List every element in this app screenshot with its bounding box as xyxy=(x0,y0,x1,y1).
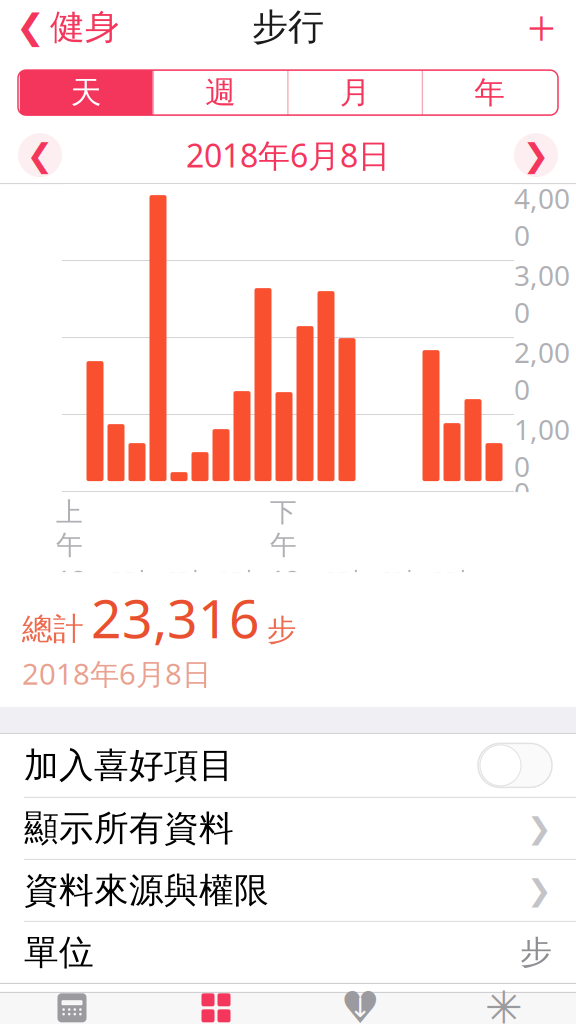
staticText: 2018年6月8日 xyxy=(186,134,390,176)
button[interactable]: 單位 xyxy=(0,922,576,983)
staticText: 天 xyxy=(71,74,102,111)
button[interactable]: 週 xyxy=(154,70,287,115)
staticText: ❯ xyxy=(527,812,552,845)
staticText: 步 xyxy=(520,933,552,972)
staticText: 總計 xyxy=(22,610,84,648)
staticText: 4,000 xyxy=(514,179,570,254)
button[interactable]: 月 xyxy=(289,70,422,115)
staticText: 0 xyxy=(514,473,530,511)
button[interactable]: ❮ xyxy=(0,0,136,58)
staticText: ❯ xyxy=(522,137,549,173)
staticText: ❮ xyxy=(26,137,53,173)
staticText: 年 xyxy=(474,74,505,111)
staticText: 3,000 xyxy=(514,256,570,331)
staticText: 6時 xyxy=(163,564,205,599)
button[interactable]: Add Data xyxy=(507,0,576,65)
staticText: ✳ xyxy=(485,982,523,1024)
staticText: 6時 xyxy=(377,564,419,599)
staticText: 步 xyxy=(267,612,296,648)
staticText: 6月8日 xyxy=(22,637,106,672)
button[interactable]: ♥ xyxy=(288,993,432,1024)
staticText: 上午 xyxy=(56,496,83,562)
staticText: + xyxy=(527,0,556,61)
button[interactable]: Next Day xyxy=(514,133,558,177)
button[interactable]: 健康資料 xyxy=(144,993,288,1024)
button[interactable]: 今天 xyxy=(0,993,144,1024)
staticText: 步行 xyxy=(252,5,324,49)
staticText: 12時 xyxy=(270,563,300,631)
button[interactable]: 資料來源與權限 xyxy=(0,860,576,921)
staticText: ❮ xyxy=(16,7,45,47)
staticText: 顯示所有資料 xyxy=(24,807,234,850)
button[interactable]: ✳ xyxy=(432,993,576,1024)
button[interactable]: 年 xyxy=(423,70,556,115)
staticText: 3時 xyxy=(109,564,151,599)
staticText: 下午 xyxy=(270,496,297,562)
staticText: 9時 xyxy=(216,564,258,599)
staticText: 23,316 xyxy=(91,582,260,653)
staticText: 2018年6月8日 xyxy=(22,654,211,693)
staticText: 健身 xyxy=(50,6,120,48)
button[interactable]: 加入喜好項目 xyxy=(0,734,576,797)
staticText: 2,000 xyxy=(514,333,570,408)
staticText: 3時 xyxy=(323,564,365,599)
staticText: 資料來源與權限 xyxy=(24,869,269,912)
staticText: ♥ xyxy=(340,983,379,1024)
staticText: ↓ xyxy=(349,993,371,1023)
staticText: 週 xyxy=(205,74,236,111)
button[interactable]: 天 xyxy=(20,70,153,115)
staticText: 12時 xyxy=(56,563,86,631)
staticText: 1,000 xyxy=(514,410,570,485)
button[interactable]: Previous Day xyxy=(18,133,62,177)
staticText: 月 xyxy=(340,74,371,111)
button[interactable]: 顯示所有資料 xyxy=(0,798,576,859)
staticText: ❯ xyxy=(527,874,552,907)
staticText: 加入喜好項目 xyxy=(24,744,234,787)
staticText: 單位 xyxy=(24,931,94,974)
staticText: 9時 xyxy=(430,564,472,599)
